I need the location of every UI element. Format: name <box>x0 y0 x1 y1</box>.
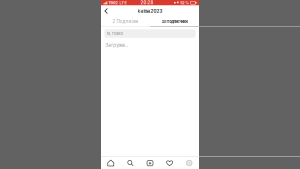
button[interactable]: Activity <box>160 157 179 169</box>
staticText: Tele2 LTE <box>107 0 126 5</box>
button[interactable]: 33 Подписчики <box>150 16 199 27</box>
staticText: 52 % <box>179 0 190 5</box>
staticText: 33 Подписчики <box>161 19 187 24</box>
staticText: Поиск <box>112 31 123 36</box>
button[interactable]: Back <box>101 5 111 16</box>
staticText: 20:28 <box>140 0 153 5</box>
button[interactable]: Profile <box>179 157 199 169</box>
button[interactable]: Search <box>121 157 140 169</box>
button[interactable]: 2 Подписки <box>101 16 150 27</box>
button[interactable]: New post <box>140 157 160 169</box>
button[interactable]: Home <box>101 157 121 169</box>
staticText: Загрузка... <box>105 42 128 48</box>
staticText: 2 Подписки <box>112 19 138 24</box>
staticText: kaiisa2023 <box>137 8 162 14</box>
